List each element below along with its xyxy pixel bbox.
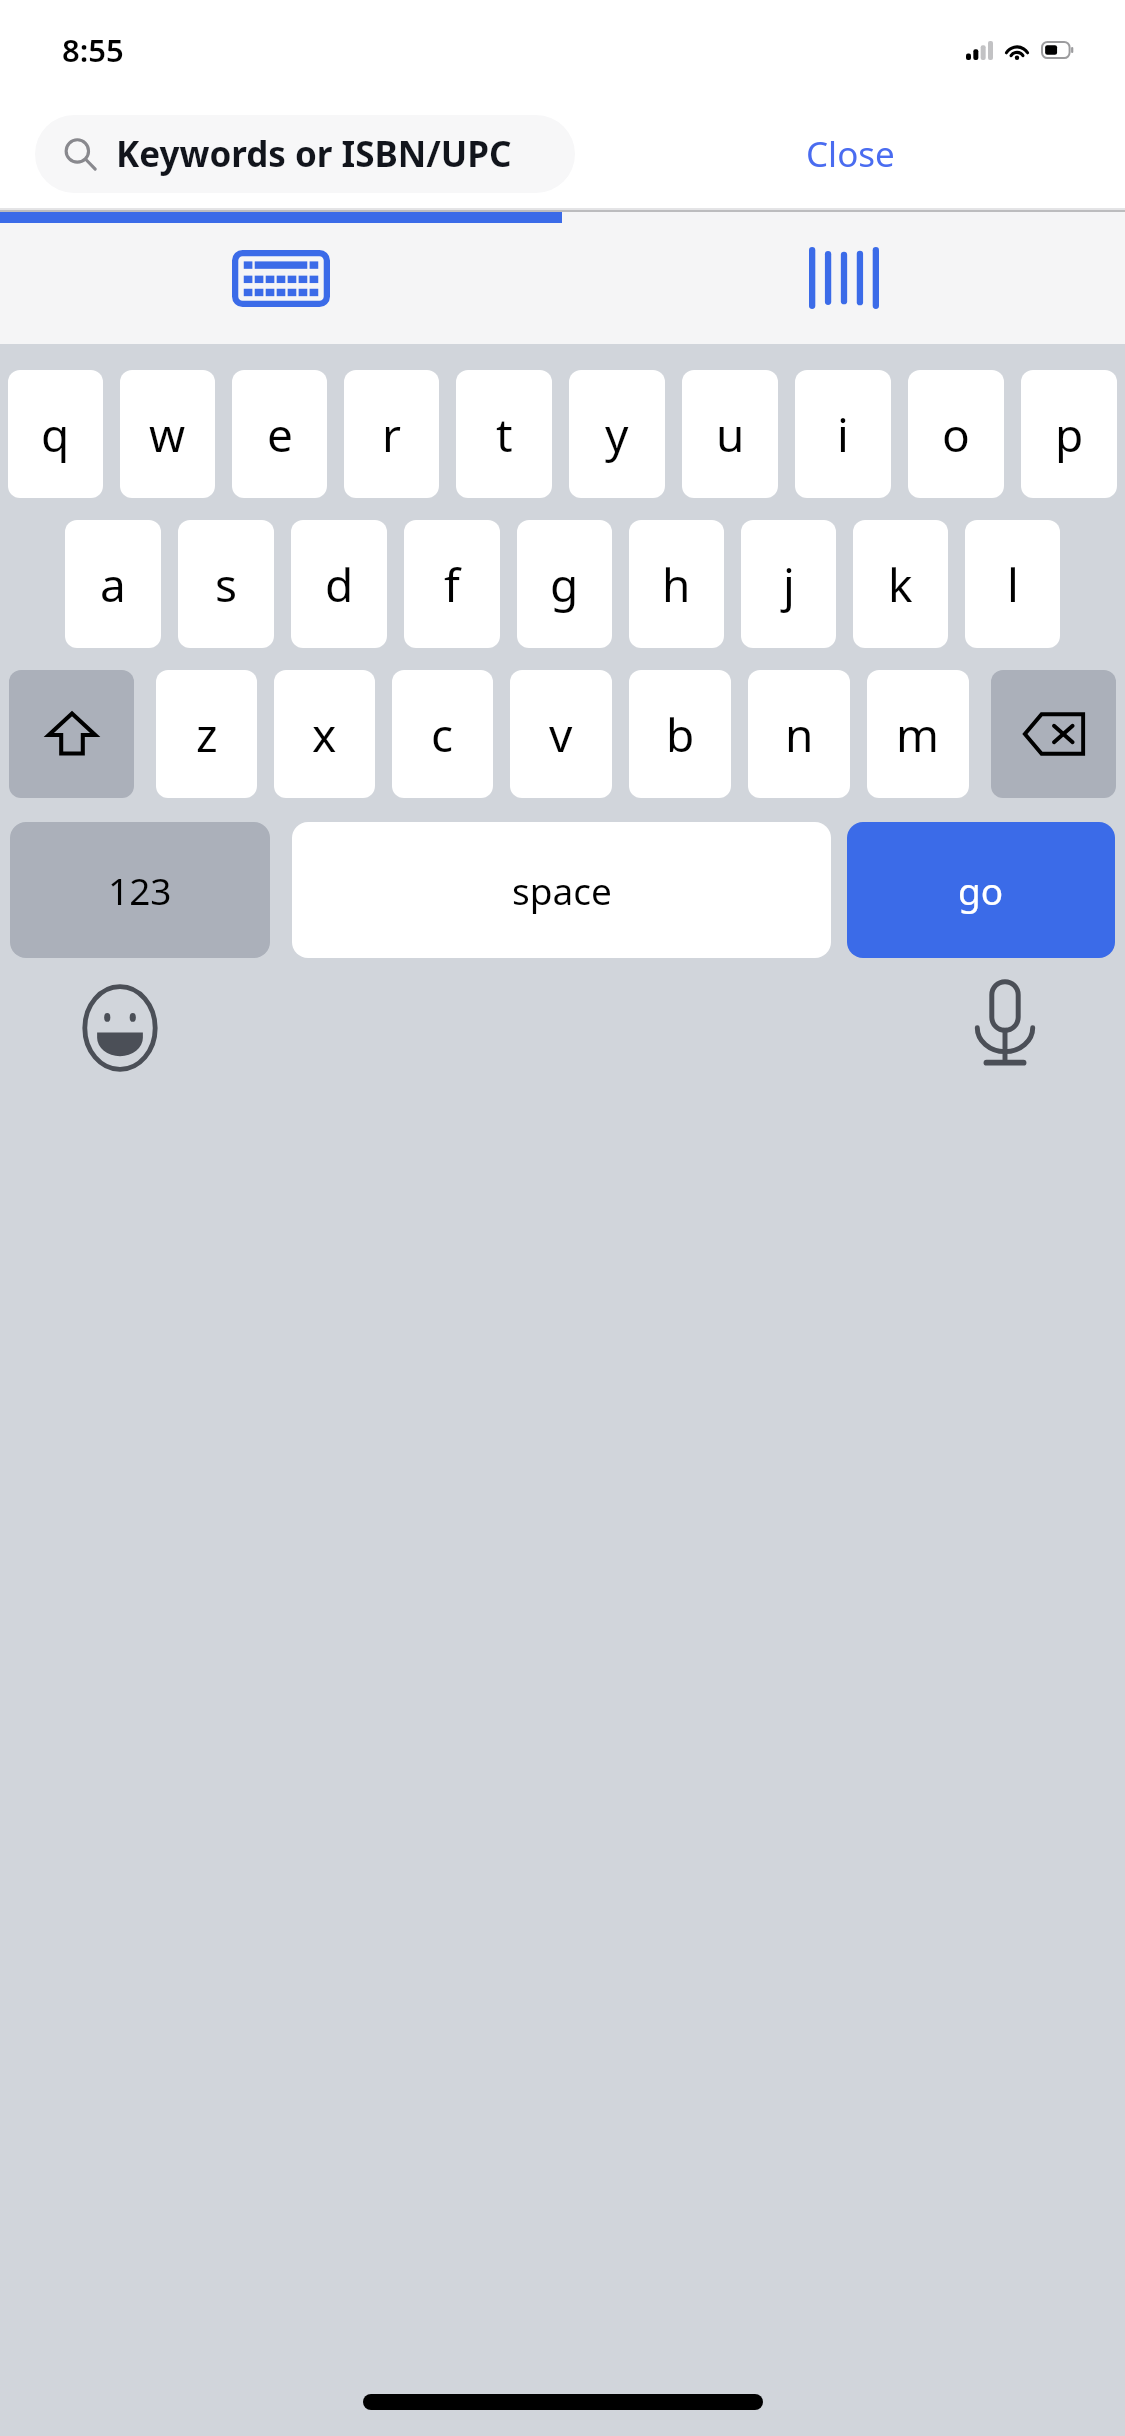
- button[interactable]: e: [232, 370, 327, 498]
- button[interactable]: 123: [10, 822, 270, 958]
- button[interactable]: v: [510, 670, 612, 798]
- button[interactable]: n: [748, 670, 850, 798]
- button[interactable]: m: [867, 670, 969, 798]
- button[interactable]: Backspace: [991, 670, 1116, 798]
- button[interactable]: q: [8, 370, 103, 498]
- button[interactable]: p: [1021, 370, 1117, 498]
- button[interactable]: Keyboard input: [0, 212, 562, 344]
- button[interactable]: h: [629, 520, 724, 648]
- button[interactable]: w: [120, 370, 215, 498]
- staticText: b: [666, 703, 695, 766]
- staticText: q: [41, 403, 70, 466]
- staticText: r: [382, 403, 401, 466]
- button[interactable]: o: [908, 370, 1004, 498]
- staticText: p: [1055, 403, 1084, 466]
- button[interactable]: t: [456, 370, 552, 498]
- staticText: v: [549, 703, 573, 766]
- button[interactable]: k: [853, 520, 948, 648]
- staticText: e: [267, 403, 293, 466]
- button[interactable]: f: [404, 520, 500, 648]
- button[interactable]: z: [156, 670, 257, 798]
- button[interactable]: d: [291, 520, 387, 648]
- button[interactable]: y: [569, 370, 665, 498]
- staticText: y: [605, 403, 629, 466]
- staticText: Close: [806, 130, 895, 178]
- staticText: x: [312, 703, 337, 766]
- staticText: i: [837, 403, 849, 466]
- button[interactable]: x: [274, 670, 375, 798]
- staticText: l: [1007, 553, 1019, 616]
- button[interactable]: c: [392, 670, 493, 798]
- button[interactable]: go: [847, 822, 1115, 958]
- staticText: d: [325, 553, 354, 616]
- staticText: a: [100, 553, 126, 616]
- button[interactable]: Emoji: [74, 982, 166, 1074]
- staticText: o: [942, 403, 970, 466]
- button[interactable]: Shift: [9, 670, 134, 798]
- staticText: 123: [108, 865, 172, 915]
- staticText: f: [444, 553, 460, 616]
- button[interactable]: s: [178, 520, 274, 648]
- button[interactable]: b: [629, 670, 731, 798]
- staticText: go: [958, 865, 1004, 915]
- button[interactable]: space: [292, 822, 831, 958]
- staticText: g: [550, 553, 579, 616]
- staticText: s: [215, 553, 238, 616]
- staticText: Keywords or ISBN/UPC: [116, 130, 512, 178]
- staticText: j: [783, 553, 795, 616]
- staticText: w: [149, 403, 186, 466]
- staticText: t: [496, 403, 513, 466]
- button[interactable]: u: [682, 370, 778, 498]
- button[interactable]: Dictation: [959, 978, 1051, 1070]
- button[interactable]: i: [795, 370, 891, 498]
- staticText: space: [512, 865, 612, 915]
- staticText: 8:55: [62, 29, 124, 71]
- staticText: u: [716, 403, 745, 466]
- staticText: n: [785, 703, 814, 766]
- button[interactable]: a: [65, 520, 161, 648]
- staticText: h: [662, 553, 691, 616]
- button[interactable]: j: [741, 520, 836, 648]
- staticText: c: [431, 703, 454, 766]
- button[interactable]: g: [517, 520, 612, 648]
- button[interactable]: l: [965, 520, 1060, 648]
- staticText: z: [196, 703, 218, 766]
- button[interactable]: r: [344, 370, 439, 498]
- button[interactable]: Scan barcode: [562, 212, 1125, 344]
- staticText: m: [896, 703, 940, 766]
- button[interactable]: Keywords or ISBN/UPC: [35, 115, 575, 193]
- staticText: k: [888, 553, 913, 616]
- button[interactable]: Close: [575, 100, 1125, 208]
